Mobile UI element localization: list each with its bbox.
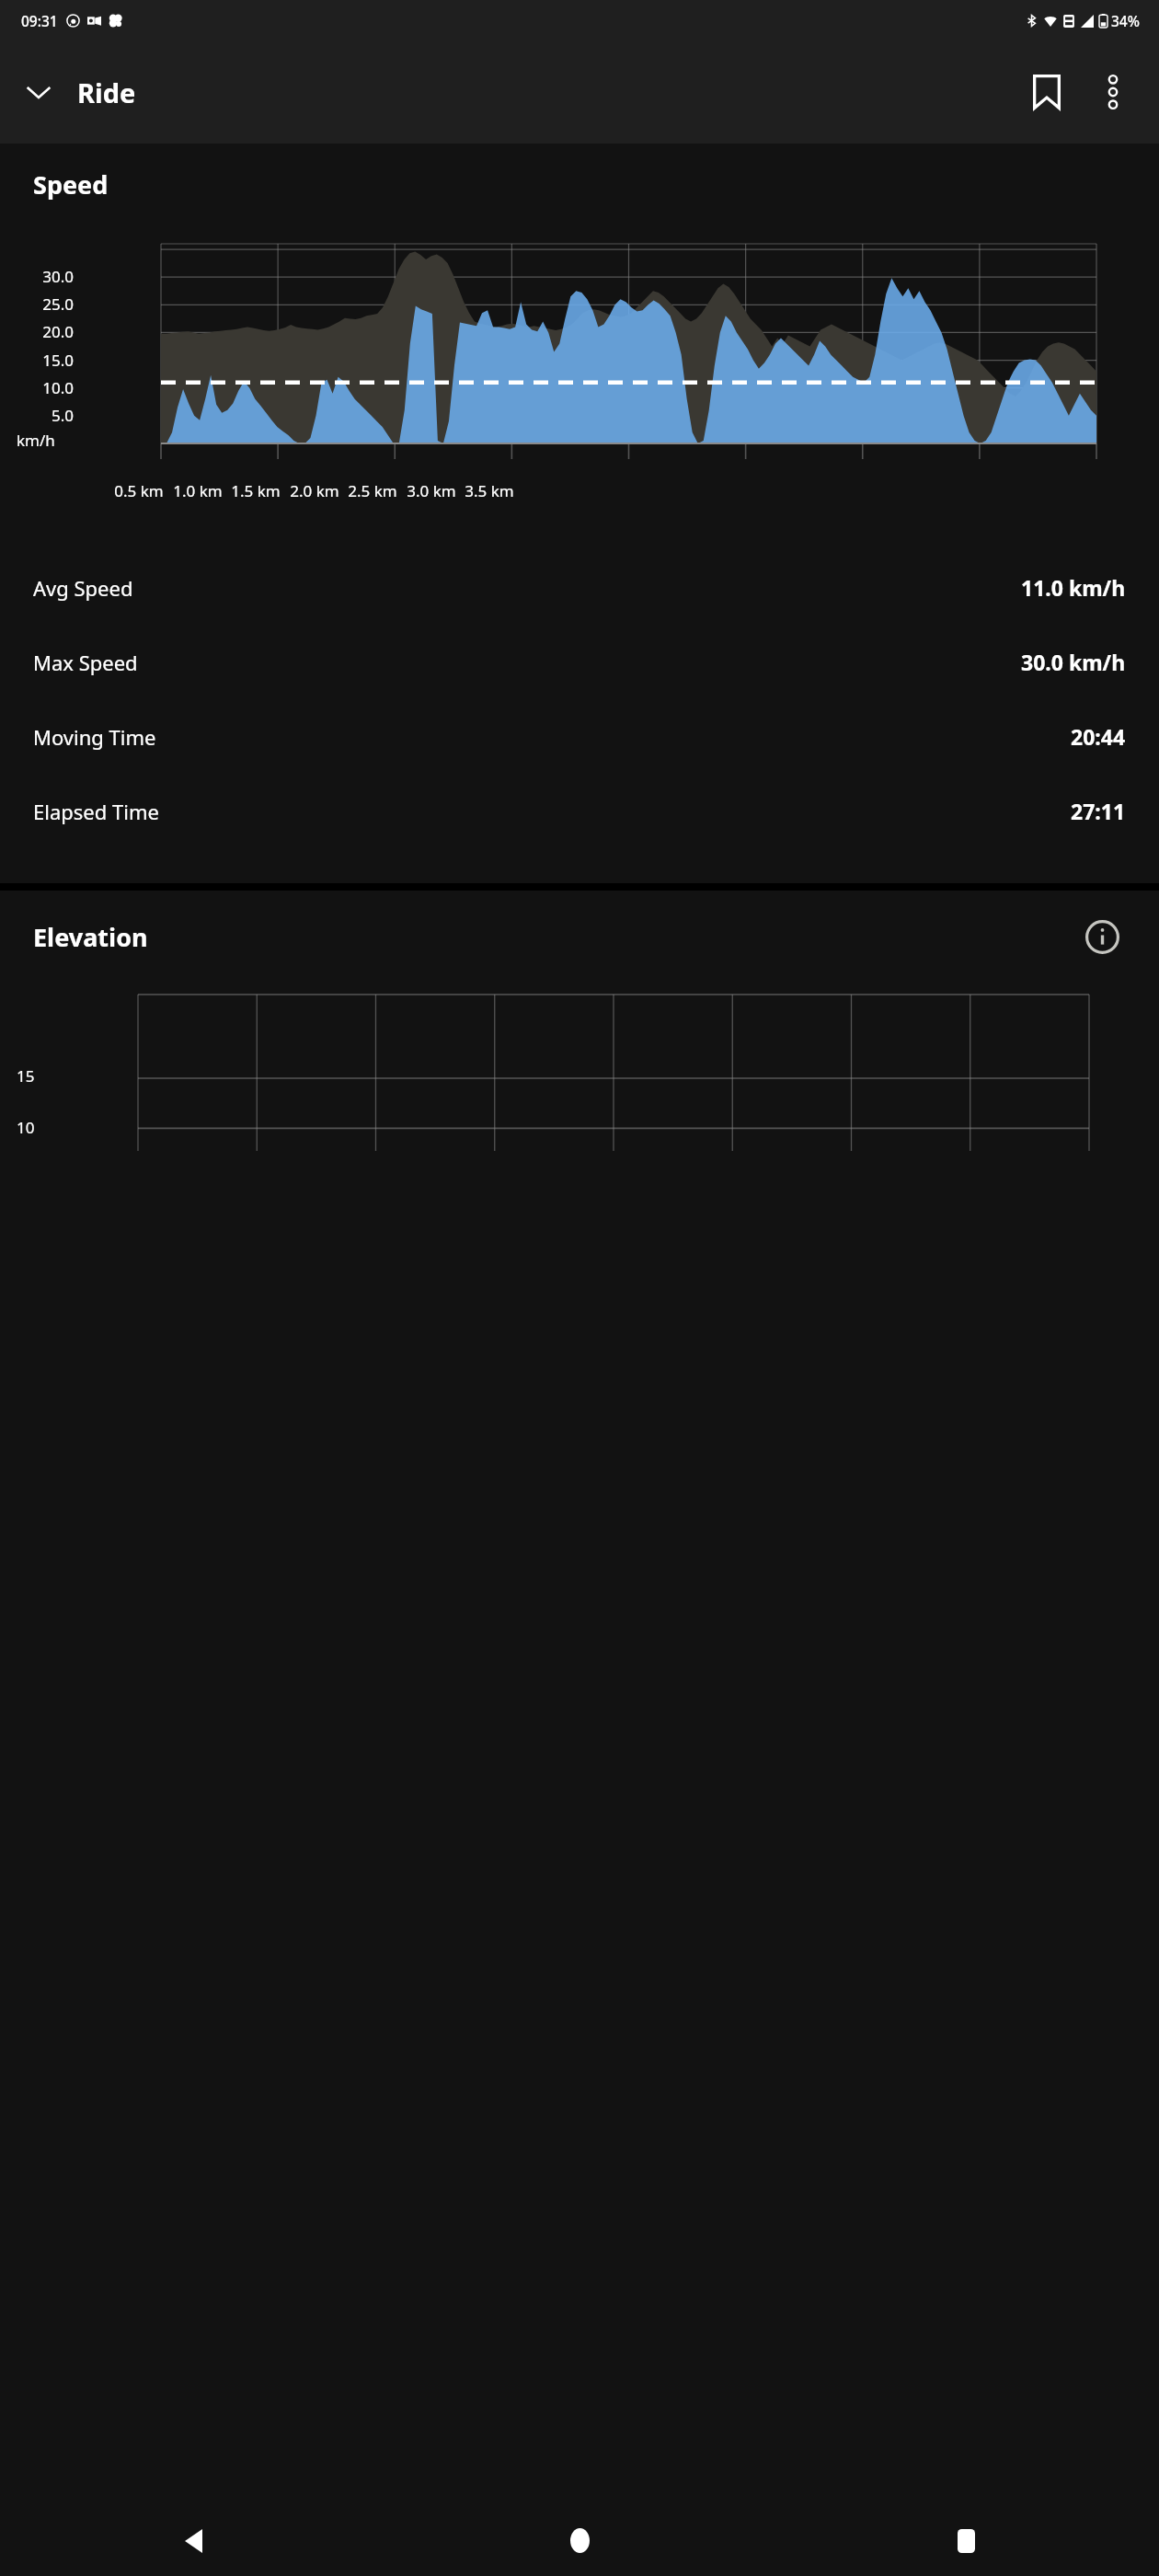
button[interactable]: Back [0, 2505, 386, 2576]
button[interactable]: Max Speed [0, 625, 1159, 699]
staticText: 20.0 [0, 321, 74, 342]
staticText: 30.0 [0, 266, 74, 287]
staticText: Elevation [33, 920, 148, 954]
staticText: 1.5 km [222, 480, 290, 501]
button[interactable]: More options [1080, 59, 1146, 125]
staticText: 27:11 [1071, 797, 1126, 825]
staticText: 3.0 km [397, 480, 465, 501]
staticText: Speed [33, 167, 109, 201]
staticText: 10 [17, 1117, 35, 1138]
staticText: 09:31 [21, 11, 58, 30]
staticText: 2.5 km [339, 480, 407, 501]
button[interactable]: Collapse [13, 66, 64, 118]
staticText: Avg Speed [33, 574, 133, 602]
staticText: 15 [17, 1065, 35, 1087]
staticText: Moving Time [33, 723, 156, 751]
staticText: 15.0 [0, 350, 74, 371]
staticText: 3.5 km [455, 480, 523, 501]
staticText: 30.0 km/h [1021, 648, 1126, 676]
staticText: 5.0 [0, 405, 74, 426]
staticText: Ride [77, 75, 136, 110]
staticText: Max Speed [33, 649, 138, 676]
button[interactable]: Recent apps [773, 2505, 1159, 2576]
staticText: 34% [1111, 11, 1140, 30]
button[interactable]: Moving Time [0, 699, 1159, 774]
button[interactable]: Information [1078, 913, 1126, 960]
staticText: 1.0 km [164, 480, 232, 501]
staticText: 11.0 km/h [1021, 573, 1126, 602]
staticText: 25.0 [0, 293, 74, 315]
button[interactable]: Elapsed Time [0, 774, 1159, 848]
button[interactable]: Home [386, 2505, 773, 2576]
button[interactable]: Avg Speed [0, 550, 1159, 625]
staticText: 10.0 [0, 377, 74, 398]
staticText: 2.0 km [281, 480, 349, 501]
staticText: km/h [17, 430, 55, 451]
staticText: 20:44 [1071, 722, 1126, 751]
button[interactable]: Bookmark [1014, 59, 1080, 125]
staticText: Elapsed Time [33, 798, 159, 825]
staticText: 0.5 km [105, 480, 173, 501]
